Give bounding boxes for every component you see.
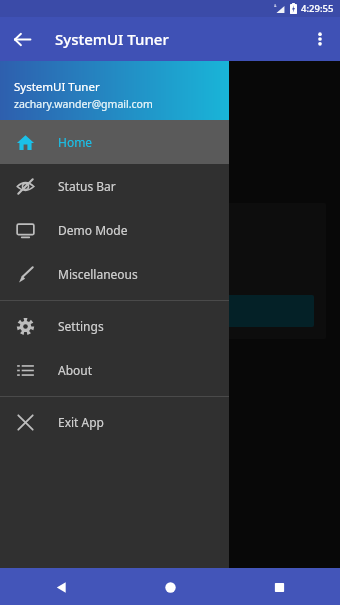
staticText: Enables hidden activity settings from yo… (14, 114, 140, 144)
staticText: SystemUI Tuner (14, 79, 100, 95)
staticText: About (58, 362, 93, 378)
staticText: Some features of this app won't work wit… (26, 215, 190, 245)
button[interactable]: Demo Mode (0, 208, 229, 252)
button[interactable]: Status Bar (0, 164, 229, 208)
staticText: (Unlike other Tuner, this one has more a… (14, 151, 160, 181)
button[interactable]: Back (6, 23, 38, 55)
staticText: Home (58, 134, 93, 150)
button[interactable]: About (0, 348, 229, 392)
staticText: Status Bar (58, 178, 116, 194)
button[interactable]: Home (155, 572, 185, 602)
button[interactable]: Settings (0, 304, 229, 348)
staticText: SystemUI Tuner (55, 29, 169, 49)
staticText: 4:29:55 (301, 2, 334, 15)
button[interactable]: GRANT (26, 295, 314, 327)
button[interactable]: Back (46, 572, 76, 602)
staticText: SystemUI Tuner (14, 82, 156, 108)
button[interactable]: Miscellaneous (0, 252, 229, 296)
staticText: Demo Mode (58, 222, 128, 238)
staticText: Exit App (58, 414, 104, 430)
staticText: Settings (58, 318, 104, 334)
staticText: To grant writing or root status use the … (26, 255, 181, 285)
button[interactable]: Recent apps (264, 572, 294, 602)
staticText: zachary.wander@gmail.com (14, 97, 153, 111)
button[interactable]: Home (0, 120, 229, 164)
button[interactable]: Exit App (0, 400, 229, 444)
button[interactable]: More options (305, 24, 335, 54)
staticText: Miscellaneous (58, 266, 138, 282)
